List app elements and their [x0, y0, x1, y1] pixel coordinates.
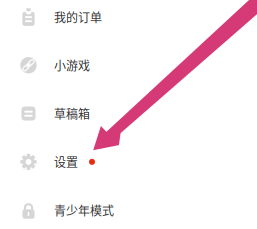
button[interactable]: 草稿箱 [0, 89, 257, 138]
button[interactable]: 小游戏 [0, 41, 257, 89]
staticText: 小游戏 [54, 57, 90, 74]
staticText: 草稿箱 [54, 105, 90, 122]
staticText: 青少年模式 [54, 201, 114, 219]
staticText: 设置 [54, 153, 78, 171]
staticText: 我的订单 [54, 8, 102, 26]
button[interactable]: 我的订单 [0, 0, 257, 41]
button[interactable]: 设置 [0, 138, 257, 186]
button[interactable]: 青少年模式 [0, 186, 257, 229]
